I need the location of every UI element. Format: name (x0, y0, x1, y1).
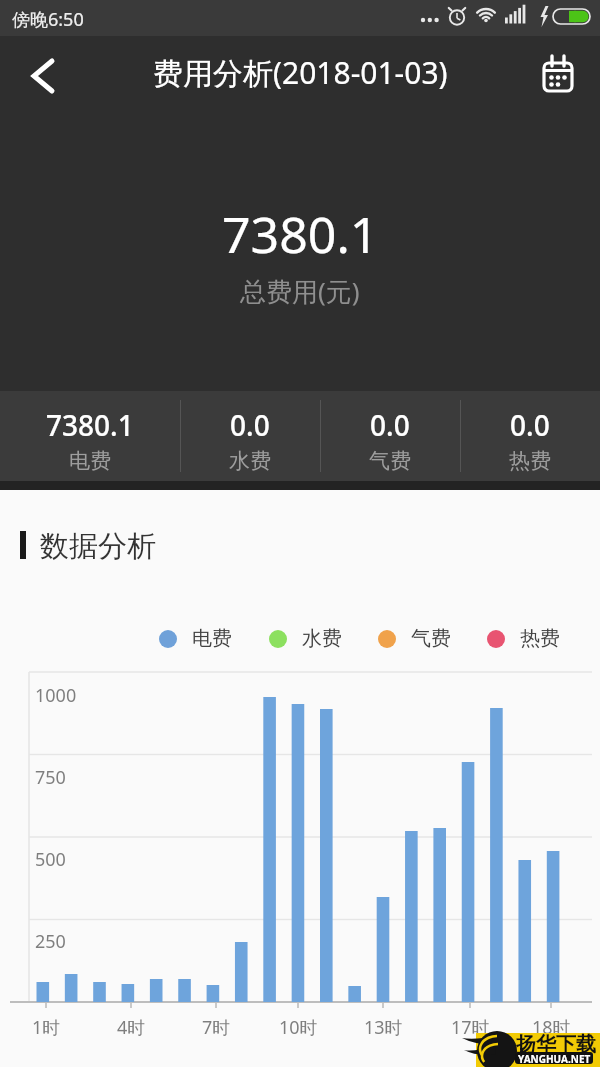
staticText: 水费 (229, 448, 271, 474)
staticText: 总费用(元) (240, 273, 360, 309)
staticText: 电费 (192, 626, 232, 651)
staticText: 17时 (451, 1015, 490, 1040)
staticText: 费用分析(2018-01-03) (153, 52, 448, 93)
button[interactable]: 热费 (487, 626, 560, 651)
staticText: 7时 (202, 1015, 231, 1040)
button[interactable]: 0.0 (320, 406, 460, 474)
button[interactable]: 电费 (159, 626, 232, 651)
staticText: 0.0 (510, 406, 550, 444)
staticText: 1000 (35, 683, 77, 708)
staticText: 水费 (302, 626, 342, 651)
staticText: 气费 (369, 448, 411, 474)
button[interactable] (530, 46, 586, 102)
button[interactable] (8, 44, 72, 106)
button[interactable]: 气费 (378, 626, 451, 651)
staticText: 750 (35, 765, 66, 790)
staticText: 数据分析 (40, 528, 156, 565)
staticText: 0.0 (370, 406, 410, 444)
staticText: 0.0 (230, 406, 270, 444)
staticText: 250 (35, 929, 66, 954)
staticText: 电费 (69, 448, 111, 474)
staticText: 气费 (411, 626, 451, 651)
staticText: YANGHUA.NET (518, 1052, 591, 1064)
staticText: 13时 (364, 1015, 403, 1040)
staticText: 傍晚6:50 (12, 7, 84, 32)
staticText: 1时 (32, 1015, 61, 1040)
staticText: 热费 (520, 626, 560, 651)
staticText: 7380.1 (46, 406, 134, 444)
staticText: 18时 (532, 1015, 571, 1040)
staticText: 热费 (509, 448, 551, 474)
button[interactable]: 7380.1 (0, 406, 180, 474)
button[interactable]: 0.0 (180, 406, 320, 474)
staticText: 10时 (279, 1015, 318, 1040)
button[interactable]: 0.0 (460, 406, 600, 474)
staticText: 500 (35, 847, 66, 872)
staticText: 4时 (117, 1015, 146, 1040)
button[interactable]: 水费 (269, 626, 342, 651)
staticText: 扬华下载 (516, 1032, 596, 1057)
staticText: 7380.1 (222, 200, 379, 268)
